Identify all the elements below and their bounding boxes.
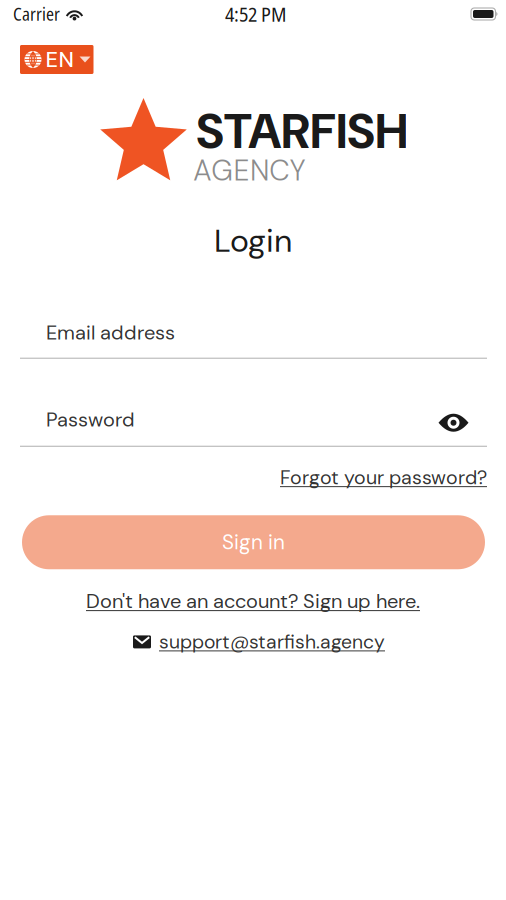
staticText: Forgot your password? <box>280 465 487 490</box>
staticText: Password <box>46 407 135 433</box>
button[interactable]: Show password <box>435 410 472 435</box>
staticText: Email address <box>46 320 175 346</box>
staticText: support@starfish.agency <box>159 629 385 654</box>
button[interactable]: support@starfish.agency <box>127 629 379 654</box>
button[interactable]: Sign in <box>22 515 485 569</box>
button[interactable]: Language: English <box>20 45 93 74</box>
staticText: Don't have an account? Sign up here. <box>86 588 420 614</box>
staticText: Sign in <box>222 529 285 556</box>
staticText: Login <box>214 220 292 262</box>
button[interactable]: Forgot your password? <box>280 465 487 490</box>
staticText: STARFISH <box>196 99 408 163</box>
staticText: Carrier <box>13 2 60 26</box>
staticText: 4:52 PM <box>225 0 287 28</box>
button[interactable]: Don't have an account? Sign up here. <box>86 588 420 614</box>
staticText: EN <box>45 45 73 74</box>
staticText: AGENCY <box>193 152 305 189</box>
